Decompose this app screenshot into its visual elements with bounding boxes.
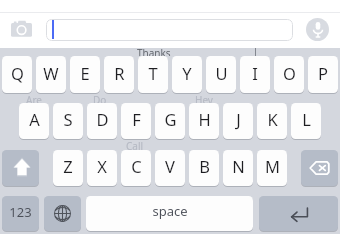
staticText: X — [97, 155, 107, 177]
staticText: Do — [93, 93, 107, 104]
button[interactable]: Z — [53, 150, 83, 186]
staticText: Are — [26, 93, 42, 104]
staticText: I — [252, 62, 258, 84]
button[interactable]: Y — [172, 56, 202, 93]
button[interactable]: N — [223, 150, 253, 186]
button[interactable]: H — [189, 103, 219, 139]
button[interactable]: Shift — [2, 150, 39, 186]
button[interactable]: P — [308, 56, 338, 93]
button[interactable]: W — [36, 56, 66, 93]
staticText: Y — [182, 62, 192, 84]
button[interactable]: M — [257, 150, 287, 186]
staticText: E — [80, 62, 90, 84]
staticText: R — [114, 62, 125, 84]
staticText: A — [29, 108, 40, 130]
staticText: H — [198, 108, 211, 130]
staticText: K — [267, 108, 278, 130]
staticText: J — [236, 108, 241, 130]
button[interactable]: V — [155, 150, 185, 186]
button[interactable]: X — [87, 150, 117, 186]
staticText: 123 — [9, 203, 32, 221]
button[interactable]: A — [19, 103, 49, 139]
staticText: Thanks — [137, 46, 171, 56]
button[interactable]: G — [155, 103, 185, 139]
button[interactable]: Voice input — [306, 18, 329, 41]
staticText: space — [152, 202, 188, 220]
button[interactable]: E — [70, 56, 100, 93]
button[interactable]: O — [274, 56, 304, 93]
button[interactable]: C — [121, 150, 151, 186]
staticText: C — [131, 155, 142, 177]
button[interactable]: U — [206, 56, 236, 93]
button[interactable]: space — [86, 196, 253, 231]
button[interactable]: J — [223, 103, 253, 139]
staticText: D — [96, 108, 109, 130]
button[interactable]: Switch keyboard — [44, 196, 81, 231]
staticText: F — [132, 108, 141, 130]
staticText: P — [318, 62, 328, 84]
button[interactable]: Camera — [10, 19, 34, 39]
button[interactable]: B — [189, 150, 219, 186]
button[interactable]: I — [240, 56, 270, 93]
staticText: Call — [126, 139, 144, 150]
button[interactable]: Backspace — [301, 150, 338, 186]
button[interactable]: Return — [259, 196, 338, 231]
button[interactable]: K — [257, 103, 287, 139]
button[interactable]: Thanks — [124, 46, 184, 56]
button[interactable]: T — [138, 56, 168, 93]
staticText: U — [215, 62, 228, 84]
staticText: Q — [11, 62, 24, 84]
staticText: Hey — [195, 93, 213, 104]
staticText: O — [283, 62, 296, 84]
staticText: T — [148, 62, 158, 84]
button[interactable]: D — [87, 103, 117, 139]
staticText: M — [265, 155, 280, 177]
staticText: G — [164, 108, 177, 130]
staticText: V — [165, 155, 175, 177]
button[interactable]: F — [121, 103, 151, 139]
button[interactable] — [46, 19, 293, 41]
staticText: S — [63, 108, 73, 130]
button[interactable]: S — [53, 103, 83, 139]
staticText: Z — [63, 155, 73, 177]
button[interactable]: R — [104, 56, 134, 93]
staticText: L — [302, 108, 311, 130]
staticText: N — [232, 155, 245, 177]
staticText: B — [199, 155, 210, 177]
button[interactable]: L — [291, 103, 321, 139]
button[interactable]: Q — [2, 56, 32, 93]
staticText: W — [43, 62, 59, 84]
button[interactable]: 123 — [2, 196, 39, 231]
